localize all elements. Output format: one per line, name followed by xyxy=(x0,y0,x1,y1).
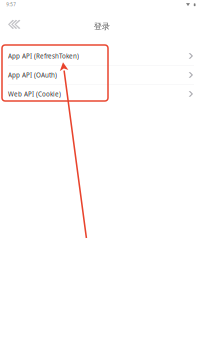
staticText: 登录 xyxy=(94,21,110,32)
button[interactable]: App API (RefreshToken) xyxy=(0,47,202,65)
button[interactable]: App API (OAuth) xyxy=(0,66,202,84)
staticText: Web API (Cookie) xyxy=(8,89,61,99)
button[interactable]: Back xyxy=(0,15,27,33)
button[interactable]: Web API (Cookie) xyxy=(0,85,202,103)
staticText: App API (RefreshToken) xyxy=(8,51,79,61)
staticText: 9:57 xyxy=(6,1,16,8)
staticText: App API (OAuth) xyxy=(8,70,57,80)
